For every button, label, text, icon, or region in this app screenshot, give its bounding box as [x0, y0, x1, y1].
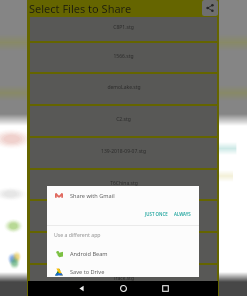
staticText: C8P1.stg — [113, 24, 134, 31]
button[interactable]: Back — [60, 281, 102, 296]
button[interactable]: Home — [102, 281, 144, 296]
button[interactable]: Recent apps — [144, 281, 186, 296]
staticText: Save to Drive — [70, 268, 105, 276]
staticText: Select Files to Share — [29, 1, 132, 16]
staticText: JUST ONCE — [145, 211, 168, 217]
staticText: Android Beam — [70, 250, 108, 258]
button[interactable]: Sample.stg — [30, 233, 217, 263]
button[interactable]: Save to Drive — [47, 263, 199, 280]
button[interactable]: T6China.stg — [30, 170, 217, 199]
staticText: 139-2018-09-07.stg — [101, 148, 146, 155]
staticText: demoLake.stg — [107, 84, 141, 91]
button[interactable]: ALWAYS — [171, 208, 194, 220]
button[interactable]: Android Beam — [47, 245, 199, 262]
button[interactable]: Share — [202, 0, 218, 16]
button[interactable]: JUST ONCE — [142, 208, 171, 220]
staticText: Use a different app — [54, 231, 101, 238]
staticText: 1566.stg — [113, 53, 134, 60]
button[interactable]: Select Files to Share — [27, 0, 219, 17]
staticText: ALWAYS — [174, 211, 191, 217]
button[interactable]: Share with Gmail — [47, 186, 199, 206]
button[interactable]: Mesh1.stg — [30, 201, 217, 231]
button[interactable]: Track.stg — [30, 265, 217, 295]
staticText: C2.stg — [116, 116, 131, 123]
staticText: T6China.stg — [110, 180, 138, 187]
staticText: Share with Gmail — [70, 192, 115, 200]
staticText: Track.stg — [113, 275, 134, 282]
